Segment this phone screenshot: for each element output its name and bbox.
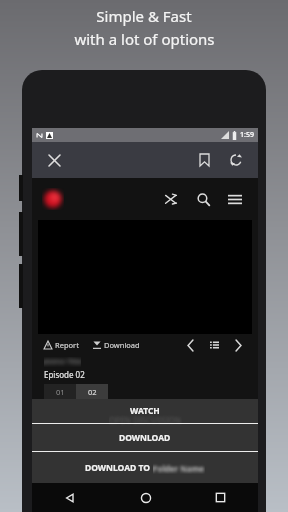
button[interactable]: Next: [228, 335, 248, 355]
staticText: WATCH: [130, 405, 160, 417]
staticText: DOWNLOAD TO: [85, 462, 153, 474]
button[interactable]: Search: [190, 186, 216, 212]
staticText: 1:59: [240, 130, 254, 140]
button[interactable]: Previous: [180, 335, 200, 355]
button[interactable]: Download: [93, 340, 140, 350]
button[interactable]: Shuffle: [158, 186, 184, 212]
staticText: OPEN DISCUSSION: [109, 415, 182, 426]
staticText: with a lot of options: [74, 29, 215, 49]
button[interactable]: Back: [32, 483, 108, 512]
staticText: Report: [55, 340, 79, 350]
staticText: Download: [104, 340, 140, 350]
button[interactable]: Recents: [183, 483, 258, 512]
staticText: 01: [56, 387, 65, 397]
staticText: Anime Title: [44, 357, 81, 367]
button[interactable]: Menu: [222, 186, 248, 212]
button[interactable]: Bookmark: [192, 148, 216, 172]
button[interactable]: Report: [44, 340, 79, 350]
button[interactable]: Refresh: [224, 148, 248, 172]
button[interactable]: DOWNLOAD: [32, 424, 258, 451]
button[interactable]: Close: [42, 148, 66, 172]
button[interactable]: 01: [44, 384, 76, 399]
button[interactable]: Logo: [42, 188, 64, 210]
staticText: Episode 02: [44, 369, 85, 380]
button[interactable]: Home: [108, 483, 183, 512]
button[interactable]: DOWNLOAD TO: [32, 452, 258, 483]
staticText: 02: [88, 387, 97, 397]
staticText: Simple & Fast: [96, 6, 192, 26]
staticText: DOWNLOAD: [119, 432, 171, 444]
button[interactable]: 02: [76, 384, 108, 399]
button[interactable]: OPEN DISCUSSION: [32, 399, 258, 423]
staticText: Folder Name: [153, 463, 205, 474]
button[interactable]: Episode list: [204, 335, 224, 355]
